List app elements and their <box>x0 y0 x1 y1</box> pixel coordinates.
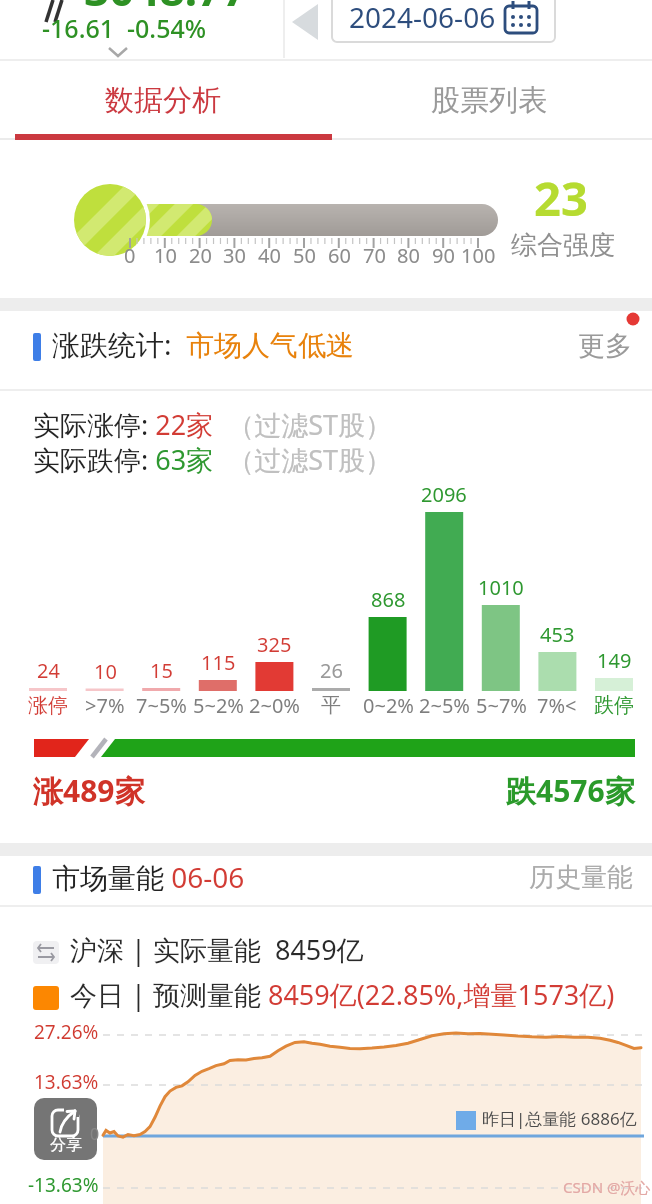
staticText: >7% <box>85 692 125 719</box>
staticText: 325 <box>257 631 292 658</box>
staticText: 2~5% <box>419 692 470 719</box>
staticText: 昨日|总量能 6886亿 <box>482 1107 637 1130</box>
staticText: 市场量能 06-06 <box>52 858 245 896</box>
staticText: 涨跌统计: 市场人气低迷 <box>52 325 355 363</box>
staticText: 30 <box>223 242 246 269</box>
staticText: 0 <box>124 242 136 269</box>
button[interactable]: 2024-06-06 <box>331 0 556 43</box>
staticText: 今日 | 预测量能 8459亿(22.85%,增量1573亿) <box>70 976 615 1013</box>
staticText: 13.63% <box>34 1069 99 1095</box>
staticText: 3048.77 <box>84 0 248 19</box>
staticText: 2024-06-06 <box>349 0 496 36</box>
staticText: 26 <box>320 657 343 684</box>
staticText: 15 <box>150 657 173 684</box>
staticText: 更多 <box>578 329 632 363</box>
staticText: 历史量能 <box>529 861 633 894</box>
button[interactable]: 股票列表 <box>326 61 652 139</box>
staticText: 股票列表 <box>431 82 547 119</box>
button[interactable]: 分享 <box>34 1098 97 1160</box>
staticText: 70 <box>363 242 386 269</box>
staticText: 100 <box>461 242 496 269</box>
button[interactable]: 更多 <box>570 323 640 369</box>
staticText: -13.63% <box>28 1172 99 1198</box>
staticText: 实际涨停: 22家 （过滤ST股） <box>33 406 393 443</box>
staticText: 平 <box>321 693 341 718</box>
staticText: 60 <box>328 242 351 269</box>
staticText: 90 <box>432 242 455 269</box>
staticText: 跌4576家 <box>506 770 635 811</box>
staticText: 5~7% <box>476 692 527 719</box>
staticText: 1010 <box>478 574 524 601</box>
staticText: 涨停 <box>28 693 68 718</box>
staticText: 115 <box>201 649 236 676</box>
staticText: 27.26% <box>34 1019 99 1045</box>
staticText: 0~2% <box>363 692 414 719</box>
staticText: 23 <box>534 166 588 226</box>
staticText: 沪深 | 实际量能 8459亿 <box>70 931 364 968</box>
staticText: 0 <box>90 1123 100 1145</box>
staticText: 40 <box>258 242 281 269</box>
button[interactable]: 历史量能 <box>521 853 641 901</box>
staticText: 7%< <box>537 692 577 719</box>
staticText: 分享 <box>50 1135 82 1155</box>
staticText: 20 <box>189 242 212 269</box>
staticText: 24 <box>37 657 60 684</box>
staticText: 数据分析 <box>105 82 221 119</box>
staticText: 868 <box>371 586 406 613</box>
staticText: 实际跌停: 63家 （过滤ST股） <box>33 441 393 478</box>
staticText: 5~2% <box>193 692 244 719</box>
staticText: 涨489家 <box>33 770 145 811</box>
staticText: 50 <box>293 242 316 269</box>
staticText: 453 <box>540 621 575 648</box>
staticText: 7~5% <box>136 692 187 719</box>
staticText: 80 <box>397 242 420 269</box>
staticText: 149 <box>597 647 632 674</box>
staticText: 2~0% <box>249 692 300 719</box>
staticText: 综合强度 <box>511 229 615 262</box>
button[interactable] <box>288 2 324 42</box>
staticText: 跌停 <box>594 693 634 718</box>
staticText: CSDN @沃心 <box>563 1177 651 1197</box>
button[interactable]: 数据分析 <box>0 61 326 139</box>
staticText: 10 <box>94 658 117 685</box>
staticText: 10 <box>154 242 177 269</box>
staticText: -16.61 -0.54% <box>42 11 207 45</box>
staticText: 2096 <box>421 481 467 508</box>
